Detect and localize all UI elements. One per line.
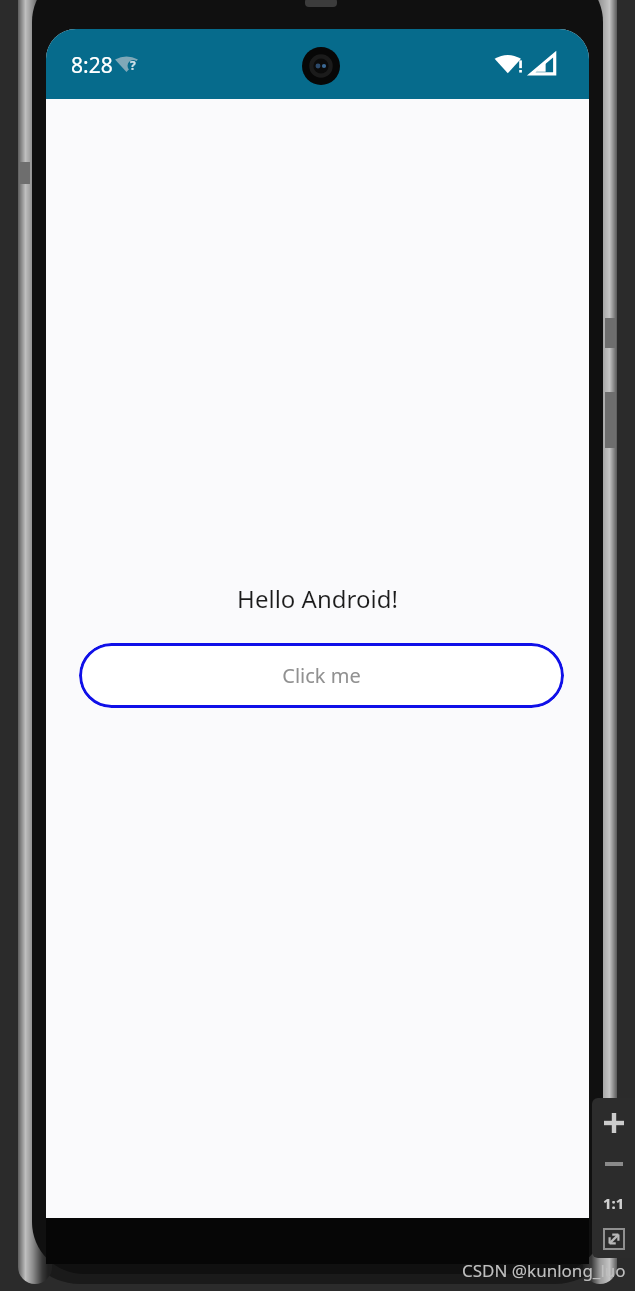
button[interactable]: Zoom in [592, 1102, 635, 1144]
staticText: CSDN @kunlong_luo [462, 1259, 626, 1282]
staticText: 8:28 [71, 51, 113, 80]
staticText: Hello Android! [46, 582, 589, 616]
button[interactable]: Click me [79, 643, 564, 708]
staticText: 1:1 [603, 1193, 625, 1213]
button[interactable]: Fit to screen [592, 1222, 635, 1256]
button[interactable]: 1:1 [592, 1184, 635, 1222]
staticText: ? [130, 57, 136, 73]
button[interactable]: Zoom out [592, 1144, 635, 1184]
staticText: Click me [282, 662, 361, 689]
